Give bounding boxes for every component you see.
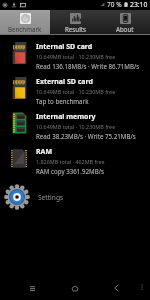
- staticText: RAM copy 3361.92MB/s: [36, 167, 104, 175]
- staticText: 70 %: [107, 0, 122, 9]
- button[interactable]: Home: [65, 278, 85, 298]
- button[interactable]: External SD card: [0, 73, 150, 108]
- staticText: Internal memory: [36, 112, 96, 122]
- staticText: Results: [65, 25, 86, 33]
- staticText: Internal SD card: [36, 42, 93, 52]
- staticText: Read 38.23MB/s · Write 75.21MB/s: [36, 132, 136, 140]
- button[interactable]: Results: [50, 10, 100, 34]
- button[interactable]: Menu: [133, 278, 150, 295]
- staticText: 1.826MB total · 462MB free: [36, 158, 105, 165]
- staticText: 23:10: [130, 0, 148, 9]
- button[interactable]: Recent apps: [22, 278, 42, 298]
- staticText: 10.649MB total · 10.230MB free: [36, 53, 116, 60]
- staticText: External SD card: [36, 77, 93, 87]
- button[interactable]: Internal memory: [0, 108, 150, 143]
- staticText: 10.649MB total · 10.230MB free: [36, 123, 116, 130]
- staticText: Benchmark: [8, 25, 42, 33]
- staticText: 10.649MB total · 10.230MB free: [36, 88, 116, 95]
- button[interactable]: Internal SD card: [0, 38, 150, 73]
- button[interactable]: Back: [106, 278, 126, 298]
- staticText: Read 136.18MB/s · Write 86.71MB/s: [36, 62, 140, 70]
- button[interactable]: About: [100, 10, 150, 34]
- staticText: Tap to benchmark: [36, 97, 89, 105]
- button[interactable]: RAM: [0, 143, 150, 178]
- staticText: About: [116, 25, 134, 33]
- button[interactable]: Settings: [0, 178, 150, 210]
- button[interactable]: Benchmark: [0, 10, 50, 34]
- staticText: Settings: [38, 193, 64, 202]
- staticText: RAM: [36, 147, 53, 157]
